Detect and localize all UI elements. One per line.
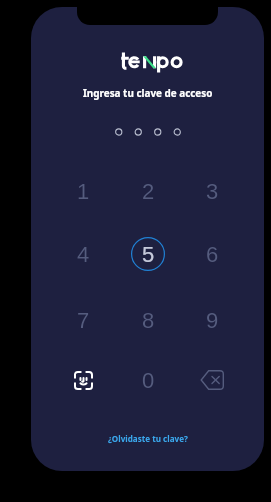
button[interactable]: 9 (183, 293, 241, 347)
staticText: 6 (206, 242, 219, 267)
staticText: 9 (206, 308, 219, 333)
staticText: Ingresa tu clave de acceso (83, 86, 213, 99)
other: Borrar (200, 370, 224, 390)
button[interactable]: 8 (119, 293, 177, 347)
staticText: 4 (77, 242, 90, 267)
button[interactable]: 1 (54, 164, 112, 218)
button[interactable]: 0 (119, 353, 177, 407)
staticText: 1 (77, 179, 90, 204)
staticText: 2 (142, 179, 155, 204)
staticText: 7 (77, 308, 90, 333)
staticText: ¿Olvidaste tu clave? (108, 433, 188, 444)
staticText: 5 (142, 242, 155, 267)
button[interactable]: 3 (183, 164, 241, 218)
button[interactable]: Borrar (183, 353, 241, 407)
staticText: 3 (206, 179, 219, 204)
other: tenpo (119, 51, 183, 71)
button[interactable]: 6 (183, 227, 241, 281)
other: Face ID (74, 371, 93, 390)
button[interactable]: 4 (54, 227, 112, 281)
button[interactable]: 7 (54, 293, 112, 347)
button[interactable]: 2 (119, 164, 177, 218)
button[interactable]: ¿Olvidaste tu clave? (102, 429, 194, 448)
button[interactable]: 5 (119, 227, 177, 281)
staticText: 8 (142, 308, 155, 333)
button[interactable]: Face ID (54, 353, 112, 407)
staticText: 0 (142, 368, 155, 393)
